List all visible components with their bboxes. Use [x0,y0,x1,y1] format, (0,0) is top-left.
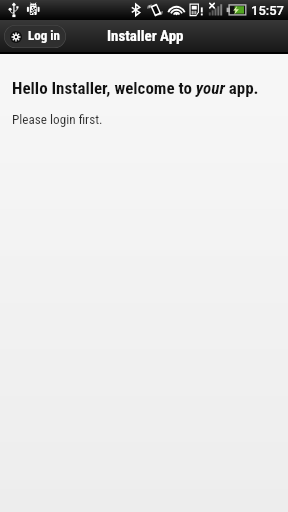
button[interactable]: Log in [4,25,66,48]
staticText: 15:57 [251,3,284,18]
other: Log in [10,31,22,43]
staticText: Log in [28,28,60,43]
staticText: Hello Installer, welcome to your app. [12,78,259,98]
staticText: Please login first. [12,112,103,127]
staticText: Installer App [107,27,184,45]
